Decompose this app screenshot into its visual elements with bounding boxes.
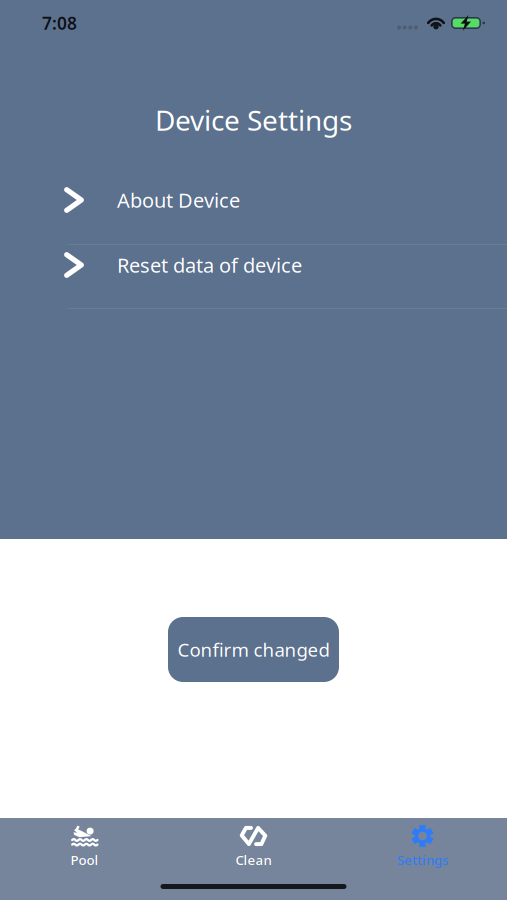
button[interactable]: Settings bbox=[338, 818, 507, 900]
staticText: Clean bbox=[235, 851, 271, 869]
staticText: Pool bbox=[70, 851, 98, 869]
button[interactable]: Clean bbox=[169, 818, 338, 900]
staticText: Device Settings bbox=[155, 101, 352, 139]
staticText: About Device bbox=[117, 187, 240, 213]
button[interactable]: About Device bbox=[0, 168, 507, 232]
button[interactable]: Reset data of device bbox=[0, 233, 507, 297]
button[interactable]: Pool bbox=[0, 818, 169, 900]
staticText: Confirm changed bbox=[177, 637, 329, 662]
staticText: Reset data of device bbox=[117, 252, 302, 278]
button[interactable]: Confirm changed bbox=[168, 617, 339, 682]
staticText: Settings bbox=[397, 851, 448, 869]
staticText: 7:08 bbox=[42, 11, 77, 34]
